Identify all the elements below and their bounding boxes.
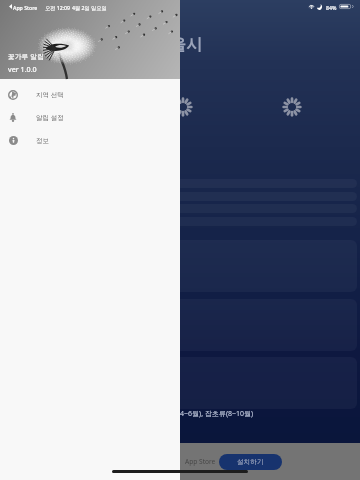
staticText: 서울시 (154, 35, 202, 55)
staticText: 정보 (36, 137, 49, 145)
button[interactable]: 설치하기 (219, 454, 282, 470)
staticText: 알림 설정 (36, 113, 64, 122)
button[interactable]: Notification settings (0, 106, 180, 129)
staticText: 84% (326, 4, 337, 11)
button[interactable]: Information (0, 129, 180, 152)
staticText: 4월 2일 일요일 (72, 4, 107, 11)
staticText: App Store (13, 4, 38, 11)
staticText: App Store (185, 457, 216, 466)
staticText: 지역 선택 (36, 90, 64, 99)
staticText: 설치하기 (237, 458, 264, 466)
staticText: ver 1.0.0 (8, 64, 37, 74)
staticText: 오리나무(4~6월), 잡초류(8~10월) (150, 409, 254, 419)
button[interactable]: Select region (0, 83, 180, 106)
staticText: 꽃가루 알림 (8, 52, 44, 61)
staticText: 오전 12:09 (45, 4, 71, 11)
